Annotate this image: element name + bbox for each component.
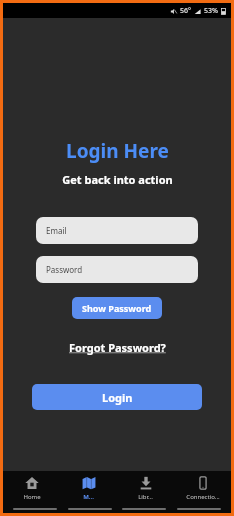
staticText: 56° bbox=[180, 6, 191, 16]
staticText: Home bbox=[23, 493, 41, 501]
button[interactable]: Email bbox=[36, 217, 198, 244]
staticText: M... bbox=[83, 493, 94, 501]
button[interactable]: Library bbox=[117, 473, 174, 504]
staticText: Forgot Password? bbox=[69, 340, 166, 355]
button[interactable]: Login bbox=[32, 384, 202, 410]
other: Library bbox=[139, 476, 153, 490]
button[interactable]: Forgot Password? bbox=[63, 337, 172, 358]
staticText: Password bbox=[46, 264, 83, 275]
staticText: Login bbox=[102, 390, 133, 405]
other: Home bbox=[25, 476, 39, 490]
staticText: Get back into action bbox=[62, 172, 173, 187]
other: Maps bbox=[82, 476, 96, 490]
staticText: Email bbox=[46, 225, 67, 236]
staticText: Show Password bbox=[82, 302, 152, 314]
button[interactable]: Connections bbox=[174, 473, 231, 504]
staticText: Connectio... bbox=[186, 493, 220, 501]
other: Connections bbox=[196, 476, 210, 490]
button[interactable]: Show Password bbox=[72, 297, 162, 319]
button[interactable]: Home bbox=[3, 473, 60, 504]
staticText: Login Here bbox=[66, 138, 169, 164]
button[interactable]: Maps bbox=[60, 473, 117, 504]
staticText: Libr... bbox=[138, 493, 153, 501]
staticText: 53% bbox=[204, 6, 218, 16]
button[interactable]: Password bbox=[36, 256, 198, 283]
